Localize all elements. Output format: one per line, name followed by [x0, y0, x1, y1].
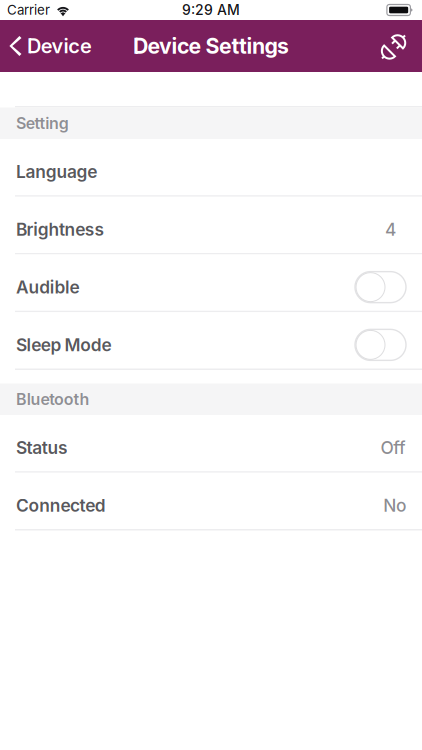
staticText: Brightness	[16, 219, 104, 240]
staticText: Device Settings	[133, 33, 289, 59]
staticText: Off	[380, 437, 406, 458]
button[interactable]: Brightness	[0, 197, 422, 253]
staticText: Status	[16, 437, 68, 458]
button[interactable]: Device	[0, 20, 102, 72]
staticText: 4	[385, 219, 396, 240]
staticText: Device	[27, 34, 92, 58]
staticText: 9:29 AM	[182, 1, 240, 18]
staticText: Audible	[16, 277, 80, 298]
button[interactable]: Disconnect	[368, 20, 422, 72]
button[interactable]: Connected	[0, 473, 422, 529]
button[interactable]: Audible	[0, 254, 422, 311]
staticText: Language	[16, 161, 97, 182]
button[interactable]: Status	[0, 415, 422, 471]
staticText: Bluetooth	[16, 390, 89, 409]
button[interactable]: Sleep Mode	[0, 312, 422, 368]
staticText: Sleep Mode	[16, 334, 111, 355]
staticText: Setting	[16, 114, 69, 133]
staticText: No	[383, 495, 406, 516]
staticText: Carrier	[7, 2, 50, 18]
staticText: Connected	[16, 495, 106, 516]
button[interactable]: Language	[0, 139, 422, 195]
